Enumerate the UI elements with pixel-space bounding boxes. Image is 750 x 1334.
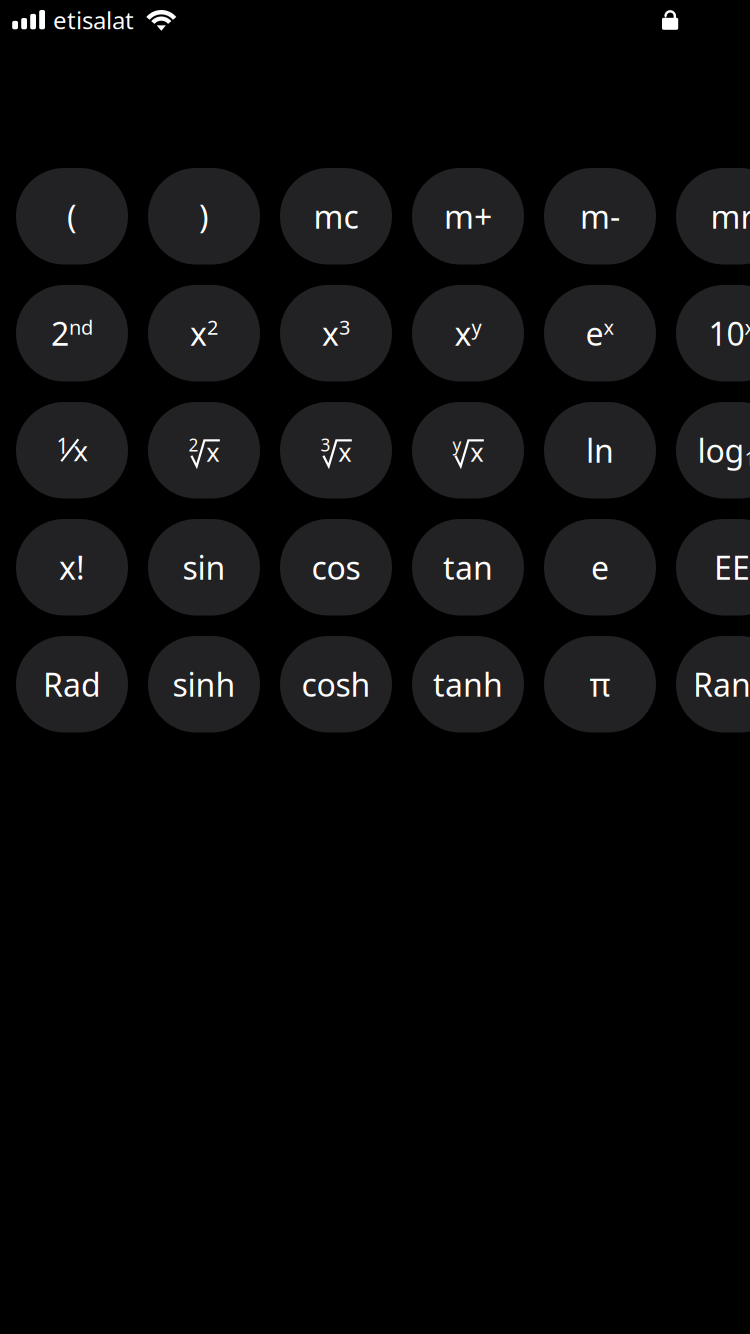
staticText: ln bbox=[586, 429, 614, 471]
staticText: Rand bbox=[693, 663, 750, 705]
staticText: x2 bbox=[190, 312, 218, 354]
staticText: π bbox=[589, 663, 610, 705]
staticText: 1 bbox=[56, 431, 68, 459]
staticText: x bbox=[73, 432, 88, 469]
staticText: e bbox=[591, 546, 609, 588]
staticText: m+ bbox=[444, 195, 492, 237]
staticText: etisalat bbox=[53, 4, 134, 36]
button[interactable]: e to the power x bbox=[544, 285, 656, 381]
button[interactable]: Right parenthesis bbox=[148, 168, 260, 264]
staticText: m- bbox=[580, 195, 620, 237]
staticText: sin bbox=[182, 546, 225, 588]
staticText: sinh bbox=[172, 663, 235, 705]
button[interactable]: sine bbox=[148, 519, 260, 615]
staticText: ) bbox=[199, 195, 209, 237]
staticText: Rad bbox=[43, 663, 101, 705]
button[interactable]: tangent bbox=[412, 519, 524, 615]
button[interactable]: Radians bbox=[16, 636, 128, 732]
button[interactable]: cosine bbox=[280, 519, 392, 615]
staticText: tanh bbox=[433, 663, 503, 705]
staticText: x bbox=[206, 435, 219, 469]
button[interactable]: Memory recall bbox=[676, 168, 750, 264]
button[interactable]: y-th root of x bbox=[412, 402, 524, 498]
staticText: tan bbox=[443, 546, 493, 588]
button[interactable]: x squared bbox=[148, 285, 260, 381]
button[interactable]: one over x bbox=[16, 402, 128, 498]
staticText: mr bbox=[710, 195, 750, 237]
staticText: cos bbox=[311, 546, 360, 588]
button[interactable]: x to the power y bbox=[412, 285, 524, 381]
staticText: 10x bbox=[708, 312, 750, 354]
staticText: mc bbox=[313, 195, 358, 237]
staticText: x! bbox=[59, 546, 85, 588]
staticText: EE bbox=[714, 546, 750, 588]
button[interactable]: pi bbox=[544, 636, 656, 732]
button[interactable]: ten to the power x bbox=[676, 285, 750, 381]
button[interactable]: hyperbolic tangent bbox=[412, 636, 524, 732]
staticText: 2nd bbox=[51, 312, 93, 354]
button[interactable]: EE bbox=[676, 519, 750, 615]
button[interactable]: Left parenthesis bbox=[16, 168, 128, 264]
staticText: ( bbox=[67, 195, 77, 237]
staticText: log10 bbox=[697, 429, 750, 471]
button[interactable]: x cubed bbox=[280, 285, 392, 381]
button[interactable]: Memory subtract bbox=[544, 168, 656, 264]
staticText: x3 bbox=[322, 312, 350, 354]
button[interactable]: logarithm base ten bbox=[676, 402, 750, 498]
staticText: x bbox=[338, 435, 351, 469]
staticText: cosh bbox=[301, 663, 370, 705]
staticText: xy bbox=[454, 312, 481, 354]
button[interactable]: Second function bbox=[16, 285, 128, 381]
staticText: x bbox=[470, 435, 483, 469]
button[interactable]: natural logarithm bbox=[544, 402, 656, 498]
staticText: 2 bbox=[188, 433, 198, 456]
button[interactable]: Memory add bbox=[412, 168, 524, 264]
button[interactable]: hyperbolic sine bbox=[148, 636, 260, 732]
button[interactable]: Memory clear bbox=[280, 168, 392, 264]
button[interactable]: factorial bbox=[16, 519, 128, 615]
button[interactable]: square root bbox=[148, 402, 260, 498]
staticText: 3 bbox=[320, 433, 330, 456]
button[interactable]: e bbox=[544, 519, 656, 615]
staticText: ex bbox=[585, 312, 614, 354]
staticText: y bbox=[452, 433, 461, 456]
button[interactable]: Random bbox=[676, 636, 750, 732]
button[interactable]: hyperbolic cosine bbox=[280, 636, 392, 732]
button[interactable]: cube root bbox=[280, 402, 392, 498]
